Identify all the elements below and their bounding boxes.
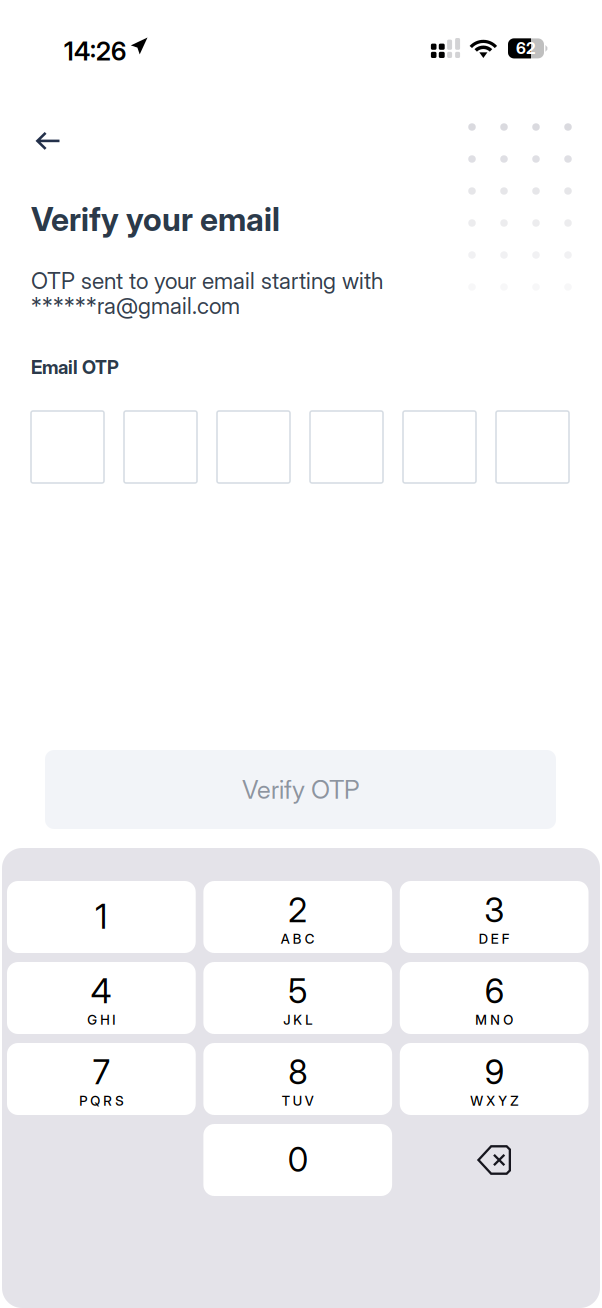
staticText: D E F: [479, 931, 510, 947]
button[interactable]: Back: [0, 119, 83, 163]
staticText: G H I: [87, 1012, 115, 1028]
staticText: 3: [484, 890, 504, 930]
staticText: 1: [95, 896, 107, 937]
staticText: T U V: [282, 1093, 314, 1109]
button[interactable]: 1: [7, 881, 196, 953]
button[interactable]: 6: [400, 962, 588, 1034]
button[interactable]: 7: [7, 1043, 196, 1115]
button[interactable]: 3: [400, 881, 588, 953]
staticText: 2: [288, 890, 307, 930]
button[interactable]: 5: [203, 962, 392, 1034]
staticText: 4: [91, 971, 112, 1011]
staticText: Email OTP: [31, 356, 119, 379]
staticText: J K L: [283, 1012, 312, 1028]
button[interactable]: Delete: [400, 1124, 588, 1196]
button[interactable]: 8: [203, 1043, 392, 1115]
button[interactable]: 2: [203, 881, 392, 953]
staticText: Verify OTP: [242, 774, 359, 805]
button[interactable]: 9: [400, 1043, 588, 1115]
staticText: 0: [288, 1139, 308, 1180]
staticText: OTP sent to your email starting with: [31, 267, 383, 294]
staticText: 14:26: [64, 36, 126, 67]
staticText: 9: [485, 1052, 504, 1092]
staticText: 62: [516, 38, 536, 58]
staticText: 6: [485, 971, 504, 1011]
staticText: W X Y Z: [470, 1093, 518, 1109]
staticText: ******ra@gmail.com: [31, 292, 240, 319]
staticText: Verify your email: [31, 200, 280, 239]
staticText: M N O: [475, 1012, 513, 1028]
button[interactable]: Verify OTP: [45, 750, 556, 829]
staticText: A B C: [281, 931, 315, 947]
button[interactable]: 4: [7, 962, 196, 1034]
staticText: P Q R S: [79, 1093, 123, 1109]
staticText: 8: [288, 1052, 307, 1092]
button[interactable]: 0: [203, 1124, 392, 1196]
staticText: 5: [288, 971, 307, 1011]
staticText: 7: [93, 1052, 110, 1092]
